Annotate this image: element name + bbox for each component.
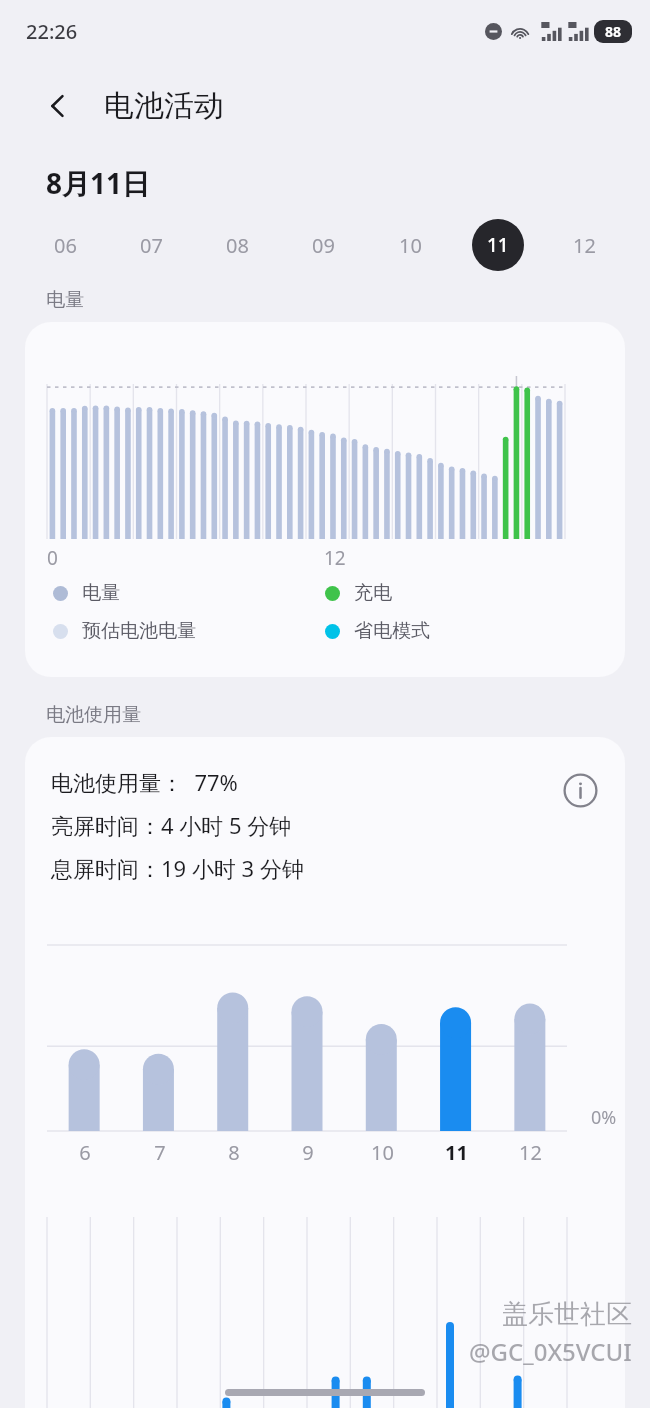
staticText: 10: [371, 1139, 394, 1166]
staticText: 12: [573, 232, 596, 259]
staticText: 电池活动: [104, 87, 224, 125]
button[interactable]: 10: [367, 218, 454, 272]
staticText: 息屏时间：19 小时 3 分钟: [51, 853, 304, 883]
staticText: 11: [445, 1139, 468, 1166]
staticText: 0: [47, 545, 58, 571]
staticText: 8月11日: [46, 164, 151, 202]
staticText: 08: [226, 232, 249, 259]
staticText: 0%: [591, 1105, 617, 1130]
staticText: 6: [79, 1139, 91, 1166]
button[interactable]: Info: [557, 767, 603, 813]
staticText: 充电: [354, 581, 392, 605]
staticText: 预估电池电量: [82, 619, 196, 643]
staticText: 09: [312, 232, 335, 259]
staticText: @GC_0X5VCUI: [469, 1335, 632, 1368]
staticText: 盖乐世社区: [502, 1298, 632, 1331]
staticText: 7: [154, 1139, 166, 1166]
button[interactable]: Back: [34, 82, 82, 130]
staticText: 电量: [82, 581, 120, 605]
staticText: 8: [228, 1139, 240, 1166]
staticText: 12: [519, 1139, 542, 1166]
staticText: 10: [399, 232, 422, 259]
staticText: 电池使用量: [46, 703, 141, 727]
staticText: 9: [302, 1139, 314, 1166]
staticText: 88: [605, 22, 622, 41]
button[interactable]: 09: [280, 218, 367, 272]
button[interactable]: 11: [454, 218, 541, 272]
staticText: 省电模式: [354, 619, 430, 643]
button[interactable]: 0: [25, 322, 625, 677]
button[interactable]: 07: [108, 218, 194, 272]
staticText: 电池使用量： 77%: [51, 767, 238, 797]
staticText: 22:26: [26, 18, 78, 45]
staticText: 07: [140, 232, 163, 259]
button[interactable]: 06: [22, 218, 108, 272]
staticText: 11: [487, 232, 509, 258]
button[interactable]: 12: [541, 218, 628, 272]
staticText: 亮屏时间：4 小时 5 分钟: [51, 810, 292, 840]
staticText: 电量: [46, 288, 84, 312]
staticText: 06: [54, 232, 77, 259]
button[interactable]: 08: [194, 218, 280, 272]
staticText: 12: [324, 545, 346, 571]
